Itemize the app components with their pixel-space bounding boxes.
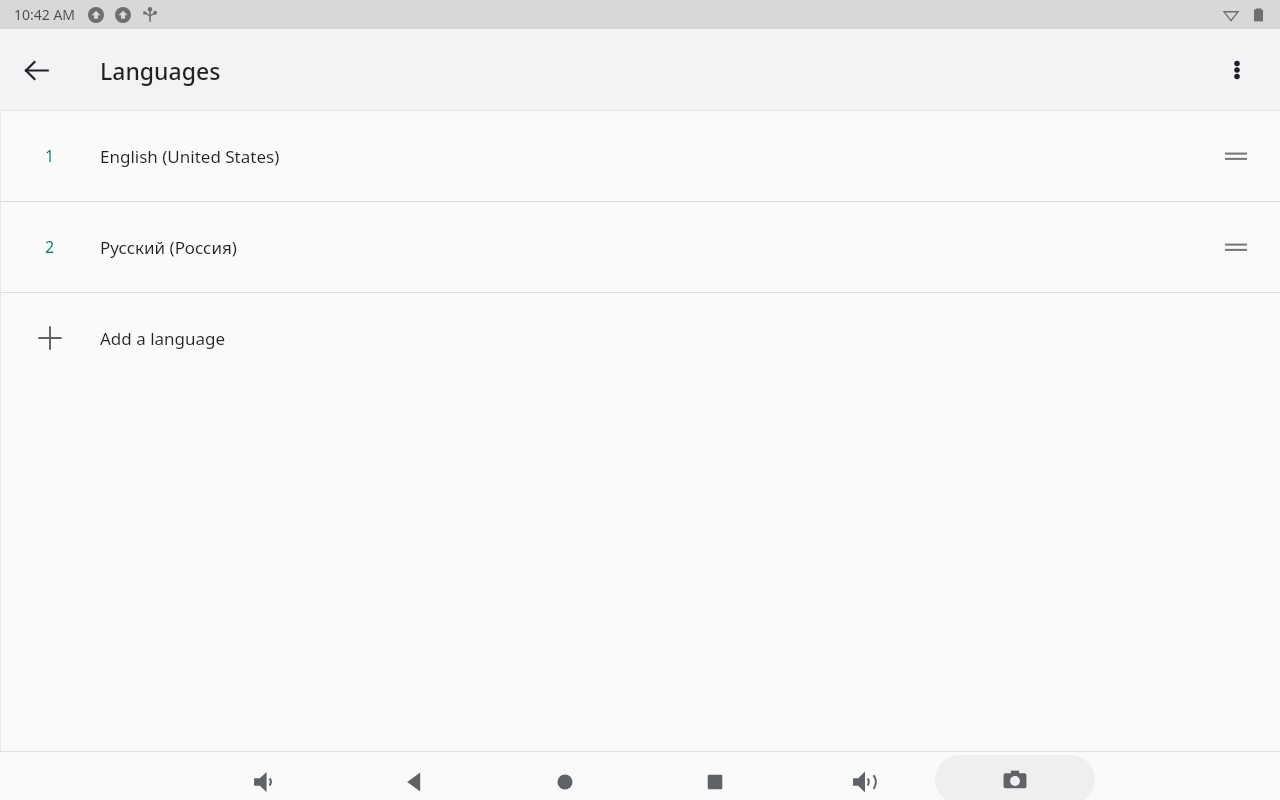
other: Reorder — [1214, 134, 1258, 178]
button[interactable]: Back — [12, 46, 60, 94]
staticText: 2 — [45, 236, 55, 258]
button[interactable]: 2 — [0, 202, 1280, 292]
button[interactable]: Recents — [691, 758, 739, 800]
button[interactable]: Back — [391, 758, 439, 800]
button[interactable]: Home — [541, 758, 589, 800]
staticText: 10:42 AM — [14, 5, 76, 24]
button[interactable]: More options — [1214, 47, 1260, 93]
staticText: Add a language — [100, 327, 226, 350]
button[interactable]: Volume down — [241, 758, 289, 800]
button[interactable]: Add a language — [0, 293, 1280, 383]
staticText: English (United States) — [100, 145, 280, 168]
staticText: Languages — [100, 55, 221, 86]
staticText: 1 — [45, 145, 55, 167]
button[interactable]: Volume up — [841, 758, 889, 800]
staticText: Русский (Россия) — [100, 236, 237, 259]
button[interactable]: 1 — [0, 111, 1280, 201]
other: Reorder — [1214, 225, 1258, 269]
button[interactable]: Camera — [935, 755, 1095, 800]
